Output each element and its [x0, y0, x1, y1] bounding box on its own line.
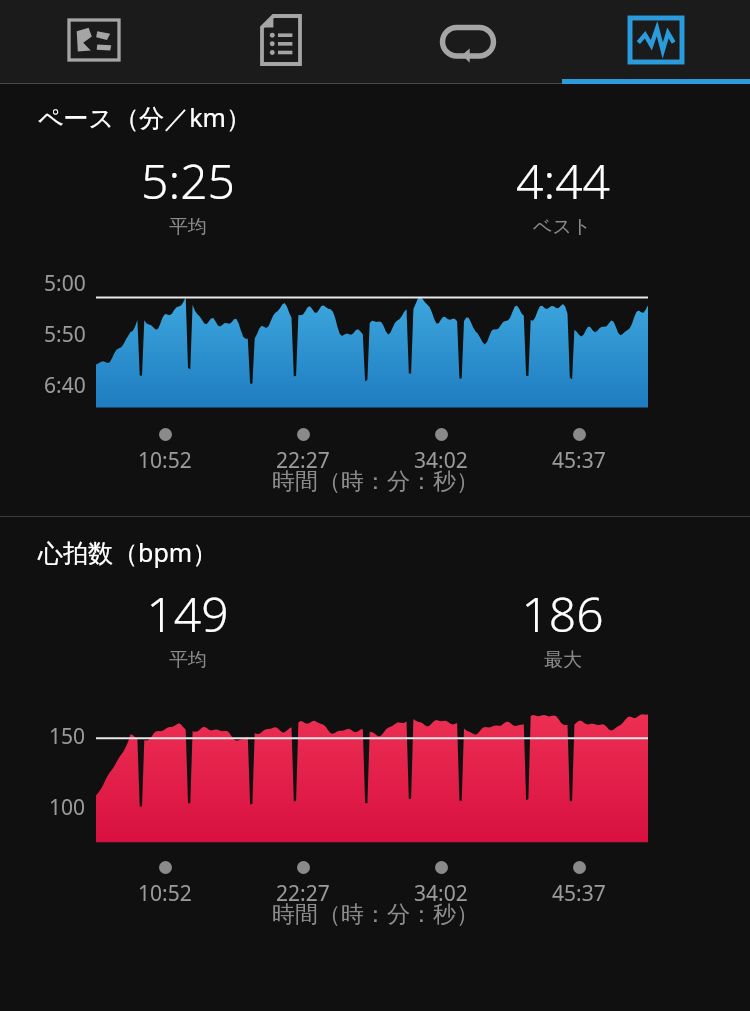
staticText: 45:37: [552, 446, 606, 475]
staticText: 時間（時：分：秒）: [272, 467, 479, 496]
staticText: 10:52: [138, 446, 192, 475]
staticText: ベスト: [533, 215, 592, 239]
staticText: 5:00: [44, 269, 86, 298]
staticText: 6:40: [44, 371, 86, 400]
staticText: 100: [49, 793, 86, 822]
staticText: 34:02: [414, 879, 468, 908]
staticText: 22:27: [276, 879, 330, 908]
button[interactable]: Laps: [374, 0, 562, 80]
staticText: 45:37: [552, 879, 606, 908]
staticText: 186: [521, 581, 604, 646]
staticText: 心拍数（bpm）: [38, 535, 218, 569]
staticText: 22:27: [276, 446, 330, 475]
staticText: 4:44: [516, 148, 610, 213]
staticText: 5:25: [141, 148, 235, 213]
button[interactable]: Map: [0, 0, 187, 80]
staticText: 5:50: [44, 320, 86, 349]
staticText: 150: [49, 722, 86, 751]
staticText: 平均: [169, 648, 207, 672]
staticText: 平均: [169, 215, 207, 239]
staticText: 時間（時：分：秒）: [272, 900, 479, 929]
button[interactable]: Charts: [562, 0, 750, 80]
staticText: 最大: [544, 648, 582, 672]
staticText: 34:02: [414, 446, 468, 475]
button[interactable]: Summary: [187, 0, 374, 80]
staticText: 10:52: [138, 879, 192, 908]
staticText: ペース（分／km）: [38, 100, 251, 134]
staticText: 149: [146, 581, 229, 646]
